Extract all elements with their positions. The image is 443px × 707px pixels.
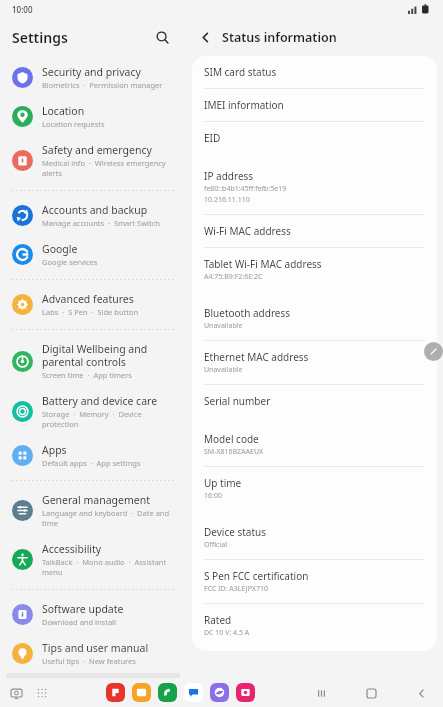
button[interactable]: Search [150,25,174,49]
staticText: Bluetooth address [204,306,291,320]
button[interactable]: Safety and emergency [6,136,180,185]
staticText: Official [204,540,227,550]
staticText: 10.216.11.110 [204,195,250,205]
staticText: Tablet Wi-Fi MAC address [204,257,322,271]
staticText: Download and install [42,617,116,627]
staticText: Software update [42,602,124,616]
staticText: TalkBack · Mono audio · Assistant menu [42,557,174,577]
button[interactable]: Tablet Wi-Fi MAC address [192,247,437,291]
button[interactable]: Phone [158,683,177,702]
staticText: Ethernet MAC address [204,350,309,364]
staticText: Google [42,242,78,256]
staticText: fe80::b4b1:45ff:fefb:5e19 [204,184,287,194]
button[interactable]: Back [409,681,433,705]
staticText: IMEI information [204,98,284,112]
button[interactable]: SIM card status [192,56,437,88]
button[interactable]: Ethernet MAC address [192,340,437,384]
staticText: Status information [222,29,337,46]
staticText: Google services [42,257,98,267]
staticText: Default apps · App settings [42,458,141,468]
button[interactable]: Security and privacy [6,58,180,97]
button[interactable]: Flipboard [106,683,125,702]
staticText: Labs · S Pen · Side button [42,307,139,317]
staticText: Tips and user manual [42,641,149,655]
staticText: Screen time · App timers [42,370,132,380]
button[interactable]: Back [194,26,216,48]
button[interactable]: Serial number [192,384,437,417]
button[interactable]: Tips and user manual [6,634,180,673]
button[interactable]: General management [6,486,180,535]
staticText: Unavailable [204,365,243,375]
button[interactable]: Samsung Internet [210,683,229,702]
staticText: Wi-Fi MAC address [204,224,291,238]
staticText: Apps [42,443,67,457]
button[interactable]: Messages [184,683,203,702]
button[interactable]: Wi-Fi MAC address [192,214,437,247]
staticText: A4:75:B9:F2:6E:2C [204,272,263,282]
button[interactable]: All apps [32,683,52,703]
button[interactable]: Battery and device care [6,387,180,436]
staticText: FCC ID: A3LEJPX710 [204,584,268,594]
staticText: Manage accounts · Smart Switch [42,218,160,228]
staticText: Location [42,104,85,118]
staticText: Security and privacy [42,65,141,79]
staticText: Useful tips · New features [42,656,136,666]
staticText: DC 10 V; 4.5 A [204,628,250,638]
staticText: EID [204,131,221,145]
button[interactable]: Recents panel [6,683,26,703]
staticText: 10:00 [12,4,33,15]
staticText: SM-X816BZAAEUX [204,447,264,457]
button[interactable]: My Files [132,683,151,702]
button[interactable]: Google [6,235,180,274]
staticText: Rated [204,613,232,627]
button[interactable]: Bluetooth address [192,297,437,340]
staticText: Accessibility [42,542,102,556]
button[interactable]: Apps [6,436,180,475]
button[interactable]: Edit [424,342,443,361]
button[interactable]: Rated [192,603,437,647]
staticText: Unavailable [204,321,243,331]
button[interactable]: Home [359,681,383,705]
button[interactable]: Gallery [236,683,255,702]
staticText: Medical info · Wireless emergency alerts [42,158,174,178]
button[interactable]: Model code [192,423,437,466]
staticText: Location requests [42,119,105,129]
button[interactable]: IP address [192,160,437,214]
staticText: Safety and emergency [42,143,152,157]
button[interactable]: S Pen FCC certification [192,559,437,603]
staticText: IP address [204,169,254,183]
staticText: Digital Wellbeing and parental controls [42,342,174,369]
staticText: Model code [204,432,259,446]
button[interactable]: Recent apps [309,681,333,705]
staticText: Language and keyboard · Date and time [42,508,174,528]
button[interactable]: Device status [192,516,437,559]
button[interactable]: Digital Wellbeing and parental controls [6,335,180,387]
button[interactable]: Accessibility [6,535,180,584]
staticText: Serial number [204,394,271,408]
staticText: S Pen FCC certification [204,569,309,583]
staticText: Biometrics · Permission manager [42,80,163,90]
staticText: Device status [204,525,267,539]
button[interactable]: Software update [6,595,180,634]
button[interactable]: IMEI information [192,88,437,121]
staticText: Up time [204,476,242,490]
staticText: SIM card status [204,65,277,79]
staticText: General management [42,493,150,507]
staticText: Settings [12,28,68,47]
staticText: Storage · Memory · Device protection [42,409,174,429]
button[interactable]: Accounts and backup [6,196,180,235]
button[interactable]: Location [6,97,180,136]
button[interactable]: Up time [192,466,437,510]
staticText: Battery and device care [42,394,158,408]
button[interactable]: Advanced features [6,285,180,324]
staticText: Accounts and backup [42,203,148,217]
button[interactable]: EID [192,121,437,154]
staticText: 16:00 [204,491,222,501]
staticText: Advanced features [42,292,134,306]
